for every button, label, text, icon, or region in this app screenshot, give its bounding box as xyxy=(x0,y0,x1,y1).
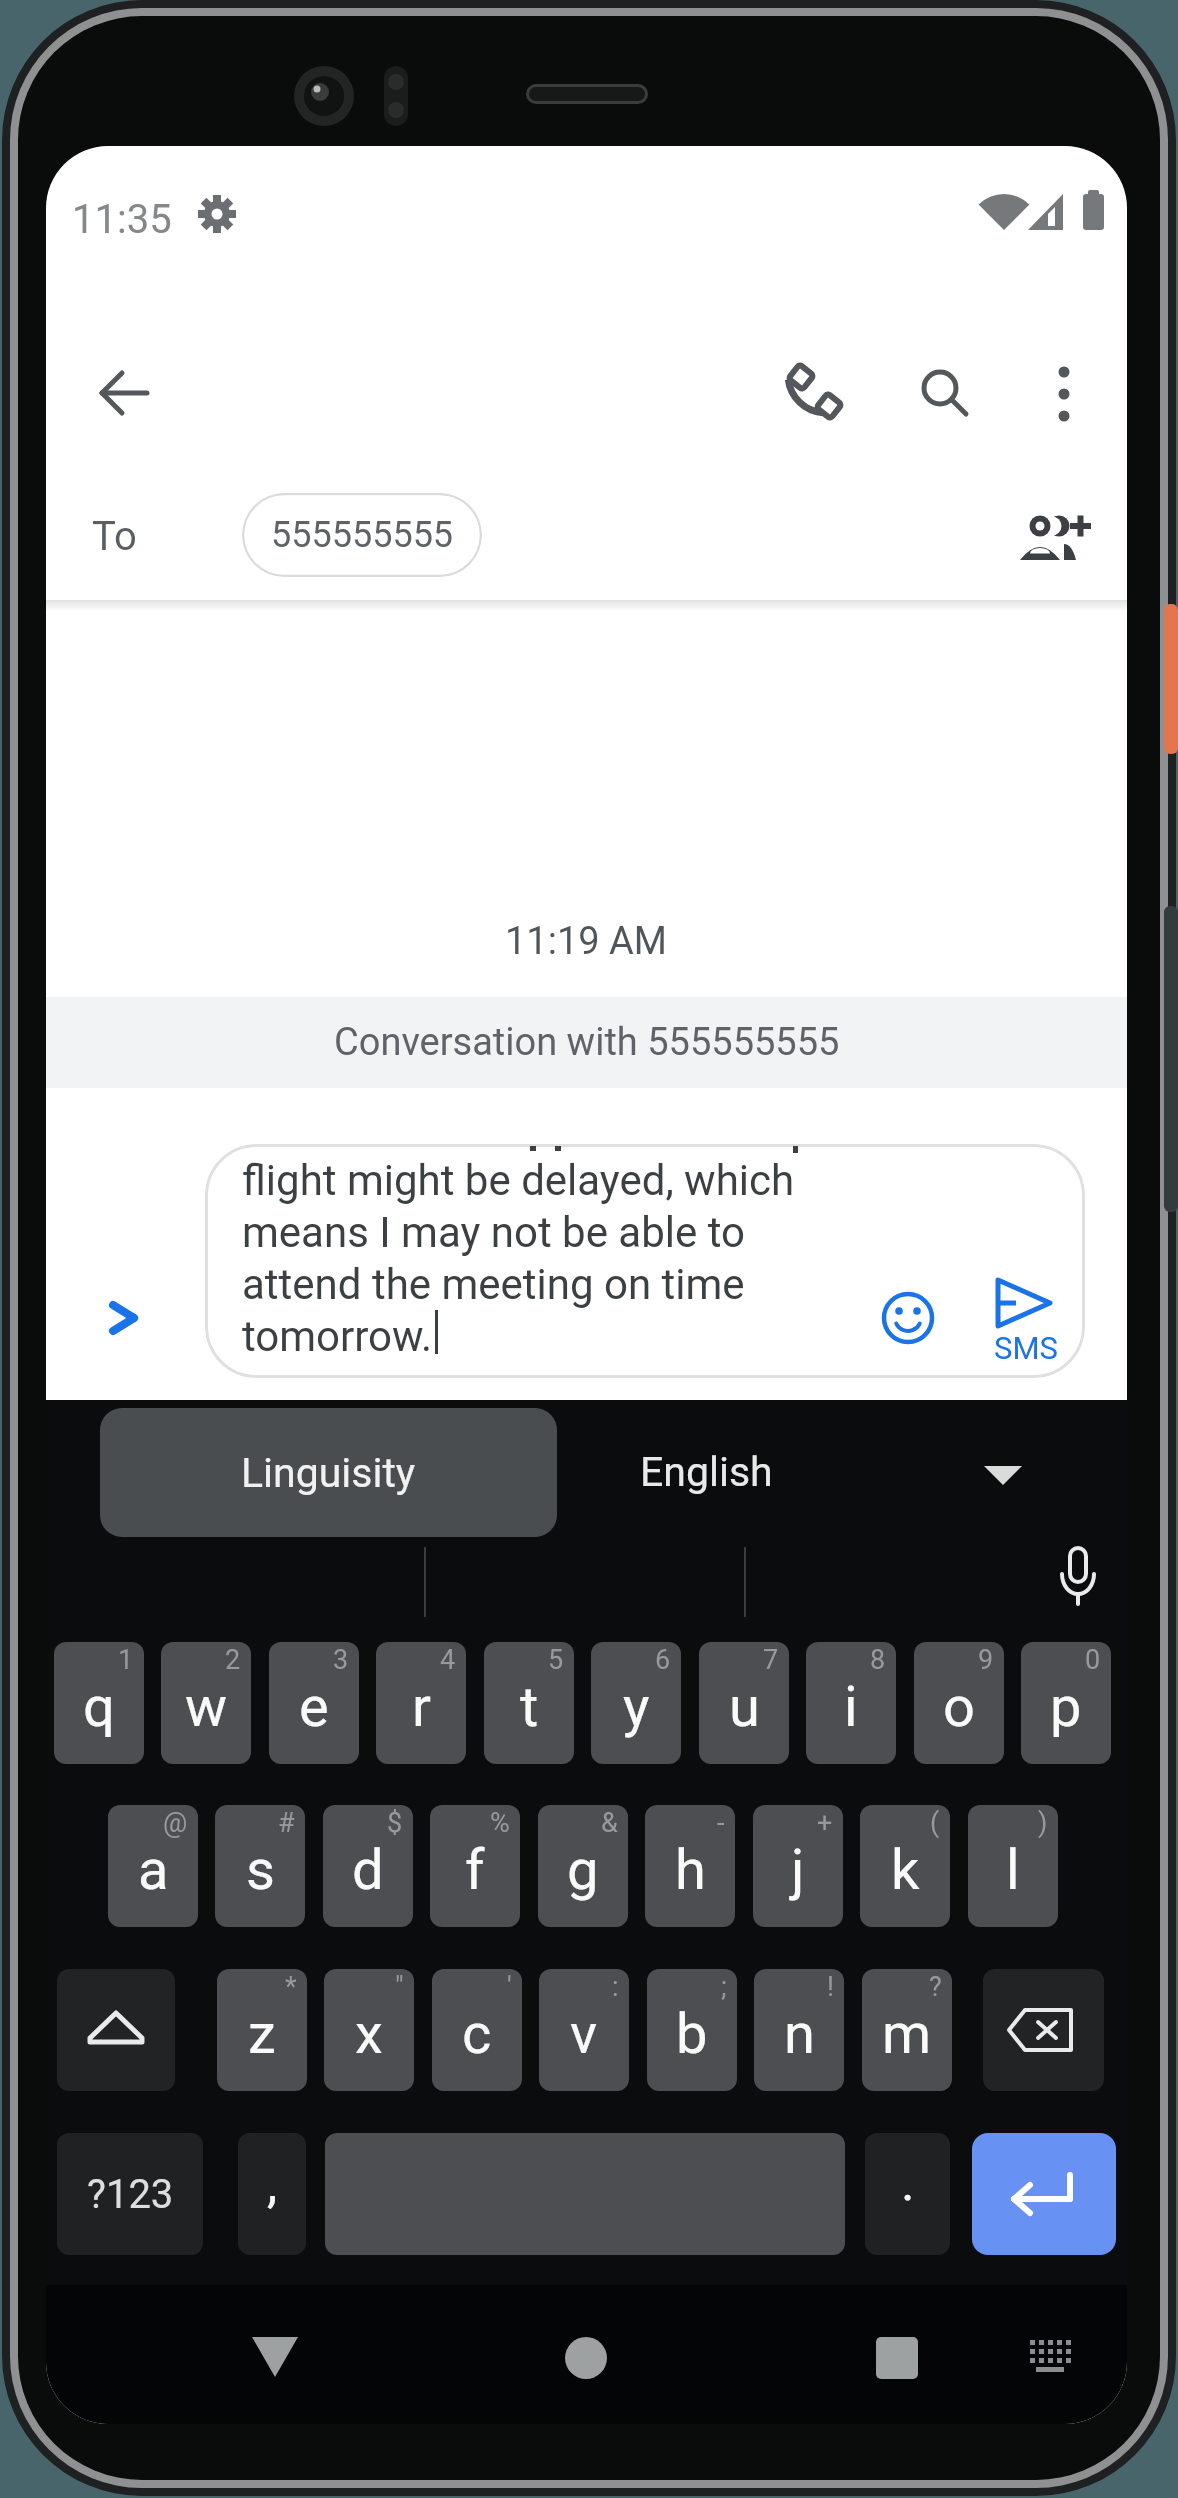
button[interactable] xyxy=(1012,506,1092,568)
button[interactable]: Linguisity xyxy=(100,1408,557,1537)
staticText: 3 xyxy=(333,1644,349,1676)
staticText: SMS xyxy=(994,1330,1058,1366)
button[interactable]: y xyxy=(591,1642,681,1764)
staticText: $ xyxy=(387,1807,403,1839)
staticText: z xyxy=(248,2001,276,2067)
staticText: - xyxy=(717,1807,725,1839)
button[interactable]: w xyxy=(161,1642,251,1764)
button[interactable] xyxy=(983,1969,1104,2091)
button[interactable] xyxy=(876,1286,940,1350)
button[interactable] xyxy=(906,356,982,432)
button[interactable]: g xyxy=(538,1805,628,1927)
staticText: r xyxy=(412,1674,431,1740)
staticText: 9 xyxy=(978,1644,994,1676)
staticText: 4 xyxy=(440,1644,456,1676)
button[interactable]: v xyxy=(539,1969,629,2091)
staticText: u xyxy=(729,1674,760,1740)
button[interactable]: English xyxy=(566,1440,846,1504)
staticText: English xyxy=(640,1448,773,1496)
button[interactable]: f xyxy=(430,1805,520,1927)
staticText: i xyxy=(844,1674,858,1740)
button[interactable]: k xyxy=(860,1805,950,1927)
staticText: w xyxy=(185,1674,228,1740)
staticText: flight might be delayed, which means I m… xyxy=(242,1156,795,1361)
staticText: e xyxy=(299,1674,329,1740)
button[interactable] xyxy=(86,355,162,431)
staticText: % xyxy=(490,1807,510,1839)
staticText: k xyxy=(891,1837,920,1903)
button[interactable]: t xyxy=(484,1642,574,1764)
staticText: 11:19 AM xyxy=(505,919,668,964)
button[interactable]: . xyxy=(865,2133,950,2255)
button[interactable] xyxy=(778,356,854,432)
button[interactable]: d xyxy=(323,1805,413,1927)
staticText: 555555555 xyxy=(271,514,454,556)
button[interactable]: c xyxy=(432,1969,522,2091)
staticText: ) xyxy=(1038,1807,1048,1839)
staticText: t xyxy=(520,1674,539,1740)
staticText: q xyxy=(83,1674,115,1740)
staticText: Conversation with 555555555 xyxy=(334,1020,840,1065)
staticText: x xyxy=(355,2001,383,2067)
staticText: . xyxy=(901,2152,915,2213)
staticText: To xyxy=(92,513,137,560)
button[interactable] xyxy=(536,2315,636,2405)
staticText: a xyxy=(138,1837,169,1903)
button[interactable]: u xyxy=(699,1642,789,1764)
staticText: n xyxy=(784,2001,815,2067)
staticText: b xyxy=(676,2001,708,2067)
button[interactable] xyxy=(1030,356,1100,432)
button[interactable]: h xyxy=(645,1805,735,1927)
staticText: c xyxy=(462,2001,492,2067)
staticText: ?123 xyxy=(87,2171,174,2218)
button[interactable]: q xyxy=(54,1642,144,1764)
button[interactable]: e xyxy=(269,1642,359,1764)
button[interactable]: l xyxy=(968,1805,1058,1927)
staticText: # xyxy=(278,1807,295,1839)
staticText: 1 xyxy=(118,1644,134,1676)
staticText: o xyxy=(943,1674,975,1740)
button[interactable] xyxy=(826,2315,926,2405)
button[interactable]: ?123 xyxy=(57,2133,203,2255)
button[interactable]: s xyxy=(215,1805,305,1927)
button[interactable]: x xyxy=(324,1969,414,2091)
button[interactable]: , xyxy=(238,2133,306,2255)
staticText: 7 xyxy=(763,1644,779,1676)
staticText: ' xyxy=(507,1971,512,2003)
button[interactable] xyxy=(1041,1540,1113,1620)
button[interactable]: p xyxy=(1021,1642,1111,1764)
button[interactable] xyxy=(57,1969,175,2091)
staticText: 0 xyxy=(1085,1644,1101,1676)
staticText: & xyxy=(601,1807,618,1839)
staticText: m xyxy=(882,2001,932,2067)
button[interactable]: j xyxy=(753,1805,843,1927)
button[interactable]: n xyxy=(754,1969,844,2091)
button[interactable]: a xyxy=(108,1805,198,1927)
staticText: 5 xyxy=(548,1644,564,1676)
button[interactable]: o xyxy=(914,1642,1004,1764)
button[interactable]: b xyxy=(647,1969,737,2091)
button[interactable]: 555555555 xyxy=(242,493,482,577)
button[interactable] xyxy=(996,2315,1106,2405)
staticText: l xyxy=(1006,1837,1020,1903)
button[interactable]: SMS xyxy=(976,1266,1076,1376)
staticText: y xyxy=(623,1674,650,1740)
button[interactable] xyxy=(972,2133,1116,2255)
staticText: " xyxy=(395,1971,404,2003)
staticText: h xyxy=(675,1837,706,1903)
button[interactable]: r xyxy=(376,1642,466,1764)
staticText: s xyxy=(246,1837,275,1903)
staticText: f xyxy=(465,1837,485,1903)
button[interactable]: z xyxy=(217,1969,307,2091)
staticText: j xyxy=(791,1837,805,1903)
staticText: p xyxy=(1050,1674,1082,1740)
button[interactable] xyxy=(226,2315,326,2405)
staticText: 11:35 xyxy=(72,196,172,243)
staticText: v xyxy=(570,2001,598,2067)
staticText: : xyxy=(612,1971,619,2003)
staticText: , xyxy=(267,2154,278,2215)
button[interactable]: i xyxy=(806,1642,896,1764)
button[interactable]: m xyxy=(862,1969,952,2091)
staticText: 2 xyxy=(225,1644,241,1676)
